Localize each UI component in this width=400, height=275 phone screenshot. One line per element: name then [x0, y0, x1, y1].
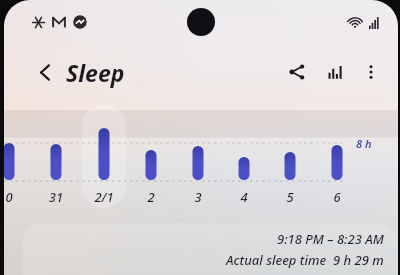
button[interactable]: 31 [40, 188, 72, 206]
button[interactable]: 3 [182, 188, 214, 206]
button[interactable]: 5 [274, 188, 306, 206]
button[interactable]: 4 [228, 188, 260, 206]
button[interactable]: More options [356, 57, 386, 87]
button[interactable]: 6 [321, 188, 353, 206]
button[interactable]: Chart [320, 57, 350, 87]
button[interactable]: Share [282, 57, 312, 87]
button[interactable]: 9:18 PM – 8:23 AM [22, 223, 398, 275]
button[interactable]: 0 [4, 188, 25, 206]
staticText: Actual sleep time 9 h 29 m [226, 251, 384, 269]
staticText: 9:18 PM – 8:23 AM [277, 230, 384, 248]
button[interactable]: Back [32, 59, 58, 85]
button[interactable]: 2 [135, 188, 167, 206]
staticText: 8 h [356, 136, 372, 151]
staticText: Sleep [66, 57, 125, 88]
button[interactable]: 2/1 [88, 188, 120, 206]
